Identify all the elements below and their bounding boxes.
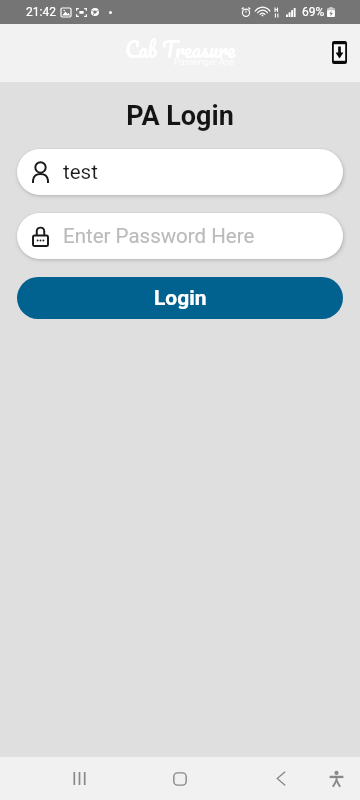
button[interactable]: Install app [322,35,356,69]
button[interactable]: Back [259,757,303,800]
button[interactable]: Enter Password Here [17,213,343,259]
button[interactable]: Recents [57,757,101,800]
staticText: 69% [302,5,325,19]
staticText: Cab Treasure [125,31,236,68]
staticText: 21:42 [26,5,56,19]
staticText: test [63,160,98,184]
button[interactable]: Login [17,277,343,319]
staticText: Login [154,286,207,311]
button[interactable]: test [17,149,343,195]
staticText: PA Login [0,100,360,132]
button[interactable]: Home [158,757,202,800]
button[interactable]: Accessibility [317,757,355,800]
staticText: Passenger App [174,57,235,68]
staticText: Enter Password Here [63,224,255,248]
